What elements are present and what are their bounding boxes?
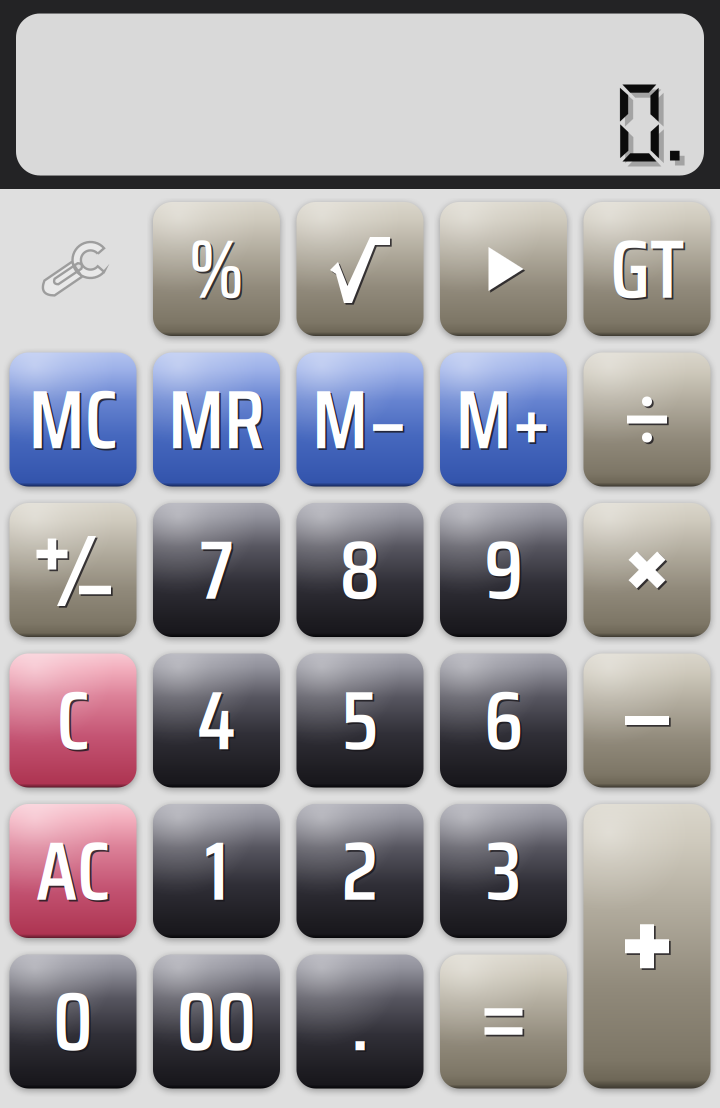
staticText: M− [314,356,410,486]
staticText: GT [610,204,684,334]
staticText: 1 [206,808,230,938]
button[interactable]: 4 [153,653,280,787]
button[interactable]: 8 [296,503,423,637]
staticText: MR [168,354,265,484]
staticText: . [353,958,371,1088]
staticText: 00 [178,958,258,1088]
staticText: 8 [341,507,382,637]
button[interactable]: M− [296,352,423,486]
staticText: % [190,206,246,336]
staticText: 6 [486,657,525,787]
staticText: MC [28,354,117,484]
button[interactable]: 9 [440,503,567,637]
staticText: 3 [486,806,521,936]
button[interactable]: M+ [440,352,567,486]
staticText: 2 [343,808,380,938]
staticText: . [351,956,369,1086]
staticText: 6 [484,655,523,785]
staticText: 0. [609,71,678,169]
button[interactable]: 6 [440,653,567,787]
button[interactable]: Multiply [583,503,710,637]
button[interactable]: 0 [9,954,136,1088]
button[interactable]: 5 [296,653,423,787]
button[interactable]: Minus [583,653,710,787]
button[interactable]: MC [9,352,136,486]
staticText: C [58,657,91,787]
staticText: % [188,204,244,334]
button[interactable]: 1 [153,804,280,938]
staticText: C [56,655,89,785]
button[interactable]: % [153,202,280,336]
button[interactable]: . [296,954,423,1088]
button[interactable]: Advance [440,202,567,336]
staticText: MC [30,356,119,486]
staticText: 0 [55,958,95,1088]
staticText: 0 [53,956,93,1086]
staticText: 4 [199,657,238,787]
button[interactable]: Settings [9,202,136,336]
staticText: 5 [341,655,378,785]
staticText: M+ [457,356,553,486]
button[interactable]: AC [9,804,136,938]
staticText: 3 [488,808,523,938]
staticText: AC [36,806,110,936]
staticText: 9 [486,507,525,637]
staticText: GT [612,206,686,336]
button[interactable]: Divide [583,352,710,486]
staticText: 7 [201,507,235,637]
staticText: 1 [204,806,228,936]
button[interactable]: Plus minus [9,503,136,637]
staticText: M− [312,354,408,484]
button[interactable]: GT [583,202,710,336]
button[interactable]: Plus [583,804,710,1088]
button[interactable]: MR [153,352,280,486]
staticText: AC [38,808,112,938]
staticText: 7 [199,505,233,635]
staticText: 9 [484,505,523,635]
button[interactable]: 2 [296,804,423,938]
button[interactable]: Square root [296,202,423,336]
button[interactable]: 00 [153,954,280,1088]
staticText: M+ [455,354,551,484]
button[interactable]: 7 [153,503,280,637]
staticText: 4 [197,655,236,785]
staticText: 8 [339,505,380,635]
staticText: MR [170,356,267,486]
staticText: 2 [341,806,378,936]
staticText: 5 [343,657,380,787]
staticText: 0. [614,76,683,174]
staticText: 00 [176,956,256,1086]
button[interactable]: C [9,653,136,787]
button[interactable]: 3 [440,804,567,938]
button[interactable]: Equals [440,954,567,1088]
